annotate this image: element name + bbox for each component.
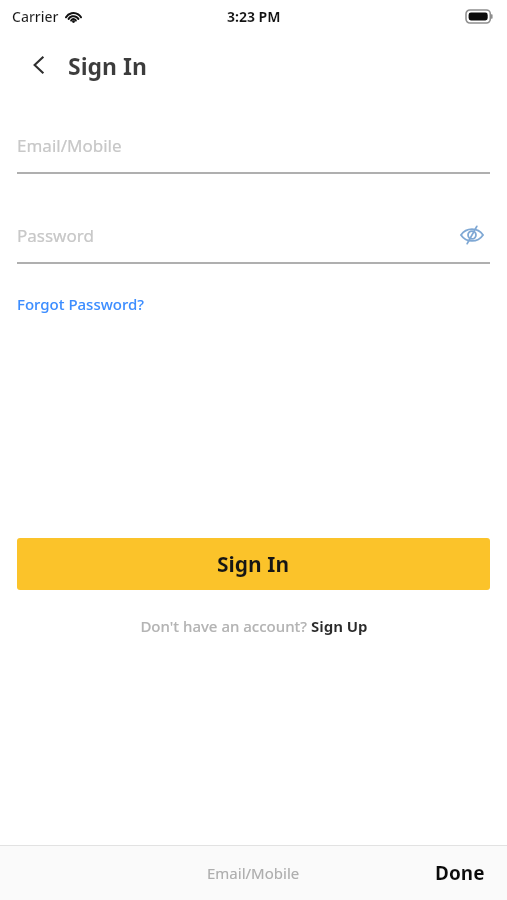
button[interactable]: Don't have an account? Sign Up — [132, 612, 376, 640]
button[interactable]: Sign In — [17, 538, 490, 590]
staticText: Email/Mobile — [207, 863, 300, 883]
button[interactable]: Email/Mobile — [17, 128, 490, 174]
staticText: 3:23 PM — [227, 7, 281, 26]
staticText: Email/Mobile — [17, 134, 122, 157]
staticText: Don't have an account? Sign Up — [140, 616, 368, 636]
button[interactable]: Back — [20, 46, 58, 84]
staticText: Password — [17, 224, 94, 247]
staticText: Sign In — [217, 550, 290, 579]
staticText: Sign In — [68, 50, 147, 81]
staticText: Done — [435, 860, 485, 886]
button[interactable]: Show password — [454, 218, 490, 252]
button[interactable]: Done — [413, 850, 507, 896]
staticText: Carrier — [12, 7, 59, 26]
staticText: Forgot Password? — [17, 294, 145, 314]
button[interactable]: Password — [17, 218, 490, 252]
button[interactable]: Forgot Password? — [17, 292, 145, 316]
